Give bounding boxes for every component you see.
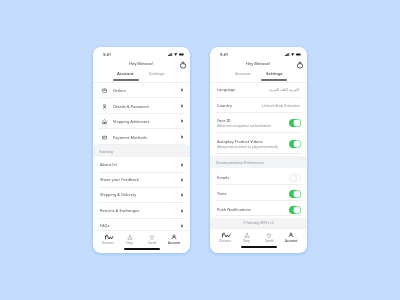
button[interactable]: Shop (236, 231, 258, 245)
button[interactable]: Account (163, 233, 185, 247)
button[interactable]: Shipping Addresses (93, 113, 190, 129)
button[interactable]: Discover (98, 233, 119, 247)
staticText: Share your Feedback (100, 177, 139, 182)
staticText: Settings (149, 71, 165, 77)
button[interactable]: Face ID (289, 119, 301, 127)
staticText: Shipping & Delivery (100, 192, 137, 197)
button[interactable]: Discover (215, 231, 236, 245)
button[interactable]: Face ID (210, 113, 307, 132)
staticText: Returns & Exchanges (100, 208, 140, 213)
staticText: Settings (266, 71, 283, 77)
button[interactable]: Payment Methods (93, 129, 190, 145)
staticText: Autoplay Product Videos (217, 139, 263, 144)
button[interactable]: Push Notifications (210, 202, 307, 217)
button[interactable]: Account (280, 231, 302, 245)
staticText: Account (117, 71, 134, 77)
staticText: United Arab Emirates (262, 103, 300, 108)
staticText: Details & Password (113, 104, 149, 109)
staticText: Texts (217, 191, 227, 196)
staticText: 9:41 (220, 52, 228, 57)
staticText: Account (285, 239, 298, 243)
staticText: العربية اللغة العربية (269, 87, 300, 92)
button[interactable]: Language (210, 82, 307, 97)
button[interactable]: Shopping bag (297, 62, 303, 68)
staticText: Discover (102, 241, 115, 245)
button[interactable]: Autoplay Product Videos (289, 140, 301, 148)
button[interactable]: About Us (93, 157, 190, 172)
button[interactable]: Country (210, 98, 307, 113)
button[interactable]: Shop (119, 233, 141, 247)
button[interactable]: Push Notifications (289, 206, 301, 214)
button[interactable]: Account (110, 71, 141, 82)
staticText: Shipping Addresses (113, 119, 150, 124)
button[interactable]: Emails (289, 174, 301, 182)
staticText: Saved (265, 239, 274, 243)
button[interactable]: Texts (289, 190, 301, 198)
button[interactable]: Returns & Exchanges (93, 203, 190, 218)
staticText: Training (99, 149, 113, 154)
staticText: Account (235, 71, 251, 77)
button[interactable]: Account (227, 71, 258, 82)
staticText: Account (168, 241, 181, 245)
button[interactable]: Shopping bag (180, 62, 186, 68)
staticText: Push Notifications (217, 207, 251, 212)
button[interactable]: Settings (258, 71, 290, 82)
staticText: Payment Methods (113, 135, 147, 140)
staticText: Shop (126, 241, 134, 245)
staticText: Face ID (217, 118, 231, 123)
staticText: Communication Preferences (216, 160, 264, 165)
staticText: Discover (219, 239, 232, 243)
button[interactable]: Texts (210, 186, 307, 201)
button[interactable]: Shipping & Delivery (93, 187, 190, 202)
staticText: Hey Metooo! (129, 61, 154, 66)
staticText: Shop (243, 239, 251, 243)
staticText: Orders (113, 88, 126, 93)
staticText: Allow face recognition authentication (217, 124, 272, 128)
staticText: © Twinning 2019 v1.0 (243, 221, 274, 225)
staticText: Country (217, 103, 232, 108)
button[interactable]: Orders (93, 82, 190, 98)
staticText: Language (217, 87, 236, 92)
button[interactable]: FAQs (93, 218, 190, 233)
staticText: 9:41 (103, 52, 111, 57)
staticText: Saved (148, 241, 157, 245)
staticText: Allow product videos to play automatical… (217, 145, 279, 149)
button[interactable]: Autoplay Product Videos (210, 134, 307, 154)
staticText: FAQs (100, 223, 110, 228)
staticText: About Us (100, 162, 118, 167)
button[interactable]: Saved (141, 233, 163, 247)
staticText: Hey Metooo! (246, 61, 271, 66)
button[interactable]: Emails (210, 170, 307, 185)
button[interactable]: Details & Password (93, 98, 190, 114)
button[interactable]: Settings (141, 71, 173, 82)
button[interactable]: Saved (258, 231, 280, 245)
button[interactable]: Share your Feedback (93, 172, 190, 187)
staticText: Emails (217, 175, 230, 180)
